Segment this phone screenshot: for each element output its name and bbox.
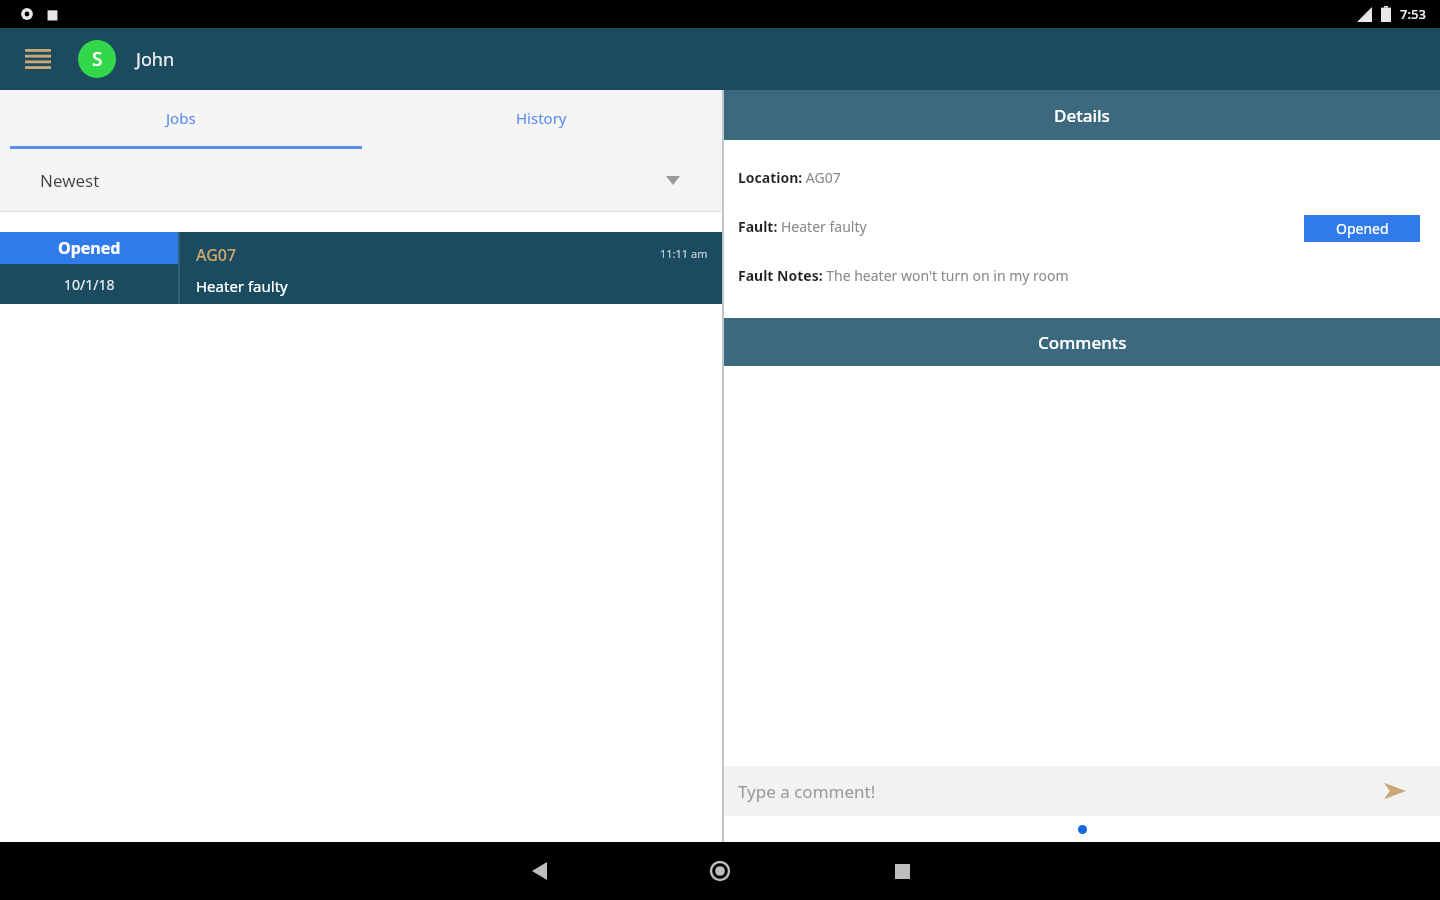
button[interactable]: Send comment bbox=[1380, 776, 1410, 806]
button[interactable]: Open navigation menu bbox=[18, 39, 58, 79]
staticText: John bbox=[136, 47, 175, 72]
staticText: Heater faulty bbox=[196, 276, 288, 296]
button[interactable]: Jobs bbox=[0, 90, 361, 146]
button[interactable]: History bbox=[361, 90, 722, 146]
button[interactable]: Newest bbox=[0, 149, 722, 211]
staticText: 7:53 bbox=[1400, 5, 1426, 23]
staticText: Jobs bbox=[166, 108, 196, 128]
staticText: History bbox=[516, 108, 567, 128]
staticText: Comments bbox=[1038, 331, 1127, 354]
button[interactable]: Opened bbox=[1304, 215, 1420, 242]
staticText: Fault Notes: The heater won't turn on in… bbox=[738, 266, 1069, 285]
staticText: Location: AG07 bbox=[738, 168, 841, 187]
staticText: Opened bbox=[58, 237, 121, 259]
button[interactable]: S bbox=[78, 40, 116, 78]
staticText: Newest bbox=[40, 169, 100, 192]
staticText: AG07 bbox=[196, 244, 237, 266]
staticText: Fault: Heater faulty bbox=[738, 217, 867, 236]
staticText: 11:11 am bbox=[660, 246, 708, 261]
staticText: 10/1/18 bbox=[64, 275, 115, 294]
staticText: Type a comment! bbox=[738, 780, 876, 803]
button[interactable]: Back bbox=[519, 851, 559, 891]
staticText: Opened bbox=[1336, 219, 1389, 238]
button[interactable]: Home bbox=[700, 851, 740, 891]
button[interactable]: Recent apps bbox=[882, 851, 922, 891]
staticText: S bbox=[92, 46, 103, 72]
button[interactable]: Opened bbox=[0, 232, 722, 304]
staticText: Details bbox=[1054, 104, 1110, 127]
